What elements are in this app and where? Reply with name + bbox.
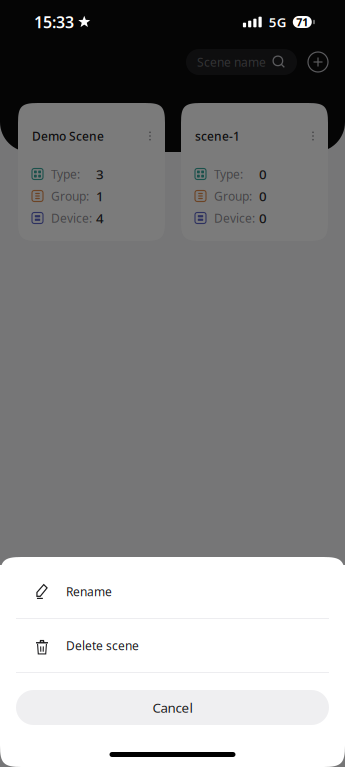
staticText: 3: [96, 165, 104, 183]
staticText: Delete scene: [66, 637, 139, 653]
staticText: 15:33: [34, 11, 74, 33]
staticText: Cancel: [152, 699, 192, 716]
staticText: Device:: [214, 210, 255, 226]
button[interactable]: Delete scene: [0, 619, 345, 672]
staticText: Group:: [51, 188, 89, 204]
staticText: scene-1: [195, 128, 240, 144]
button[interactable]: Cancel: [0, 673, 345, 725]
staticText: 1: [96, 187, 104, 205]
button[interactable]: Rename: [0, 565, 345, 618]
staticText: Type:: [214, 166, 243, 182]
staticText: Rename: [66, 583, 112, 599]
staticText: 0: [259, 187, 267, 205]
staticText: 0: [259, 165, 267, 183]
staticText: 0: [259, 209, 267, 227]
button[interactable]: More options for scene-1: [304, 125, 322, 147]
staticText: Type:: [51, 166, 80, 182]
staticText: Demo Scene: [32, 128, 104, 144]
staticText: 4: [96, 209, 104, 227]
staticText: Device:: [51, 210, 92, 226]
button[interactable]: More options for Demo Scene: [141, 125, 159, 147]
staticText: 71: [296, 15, 308, 29]
staticText: Group:: [214, 188, 252, 204]
button[interactable]: Scene name: [186, 49, 297, 75]
staticText: 5G: [269, 13, 287, 31]
button[interactable]: Add scene: [297, 44, 339, 80]
staticText: Scene name: [197, 54, 266, 70]
